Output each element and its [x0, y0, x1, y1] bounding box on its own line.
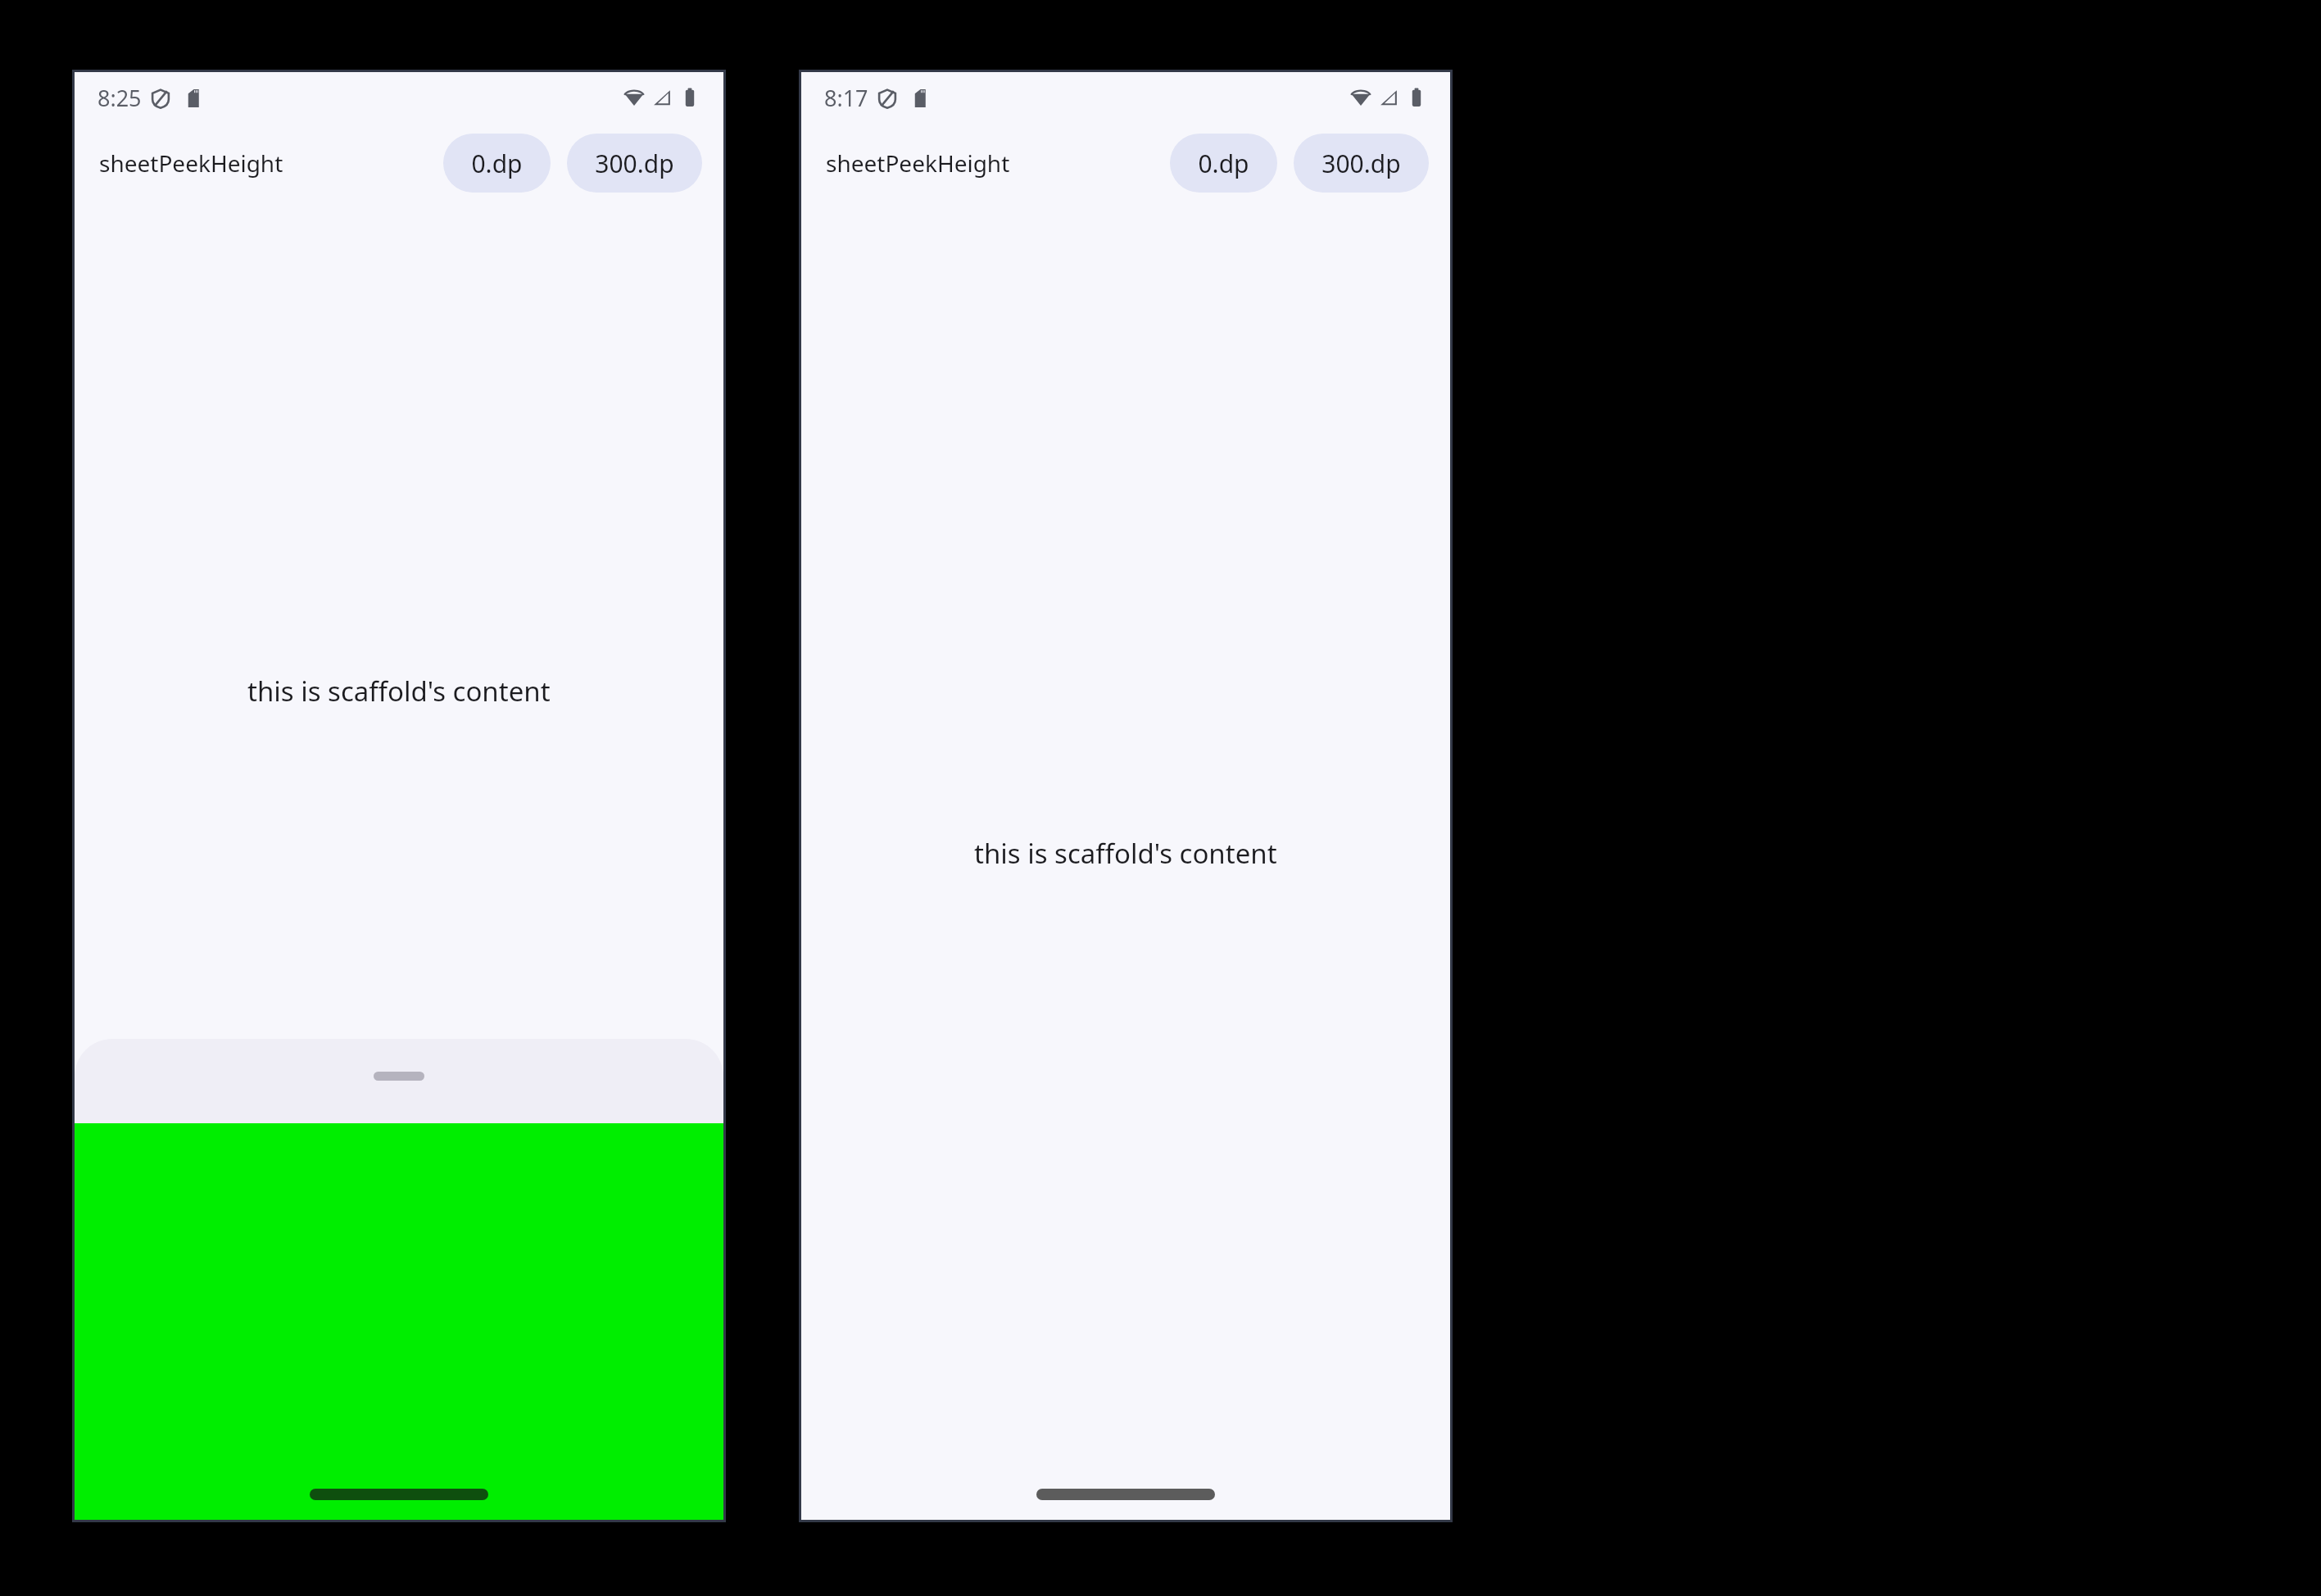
button[interactable]: 0.dp — [1170, 134, 1277, 193]
staticText: 300.dp — [1321, 147, 1401, 180]
staticText: 0.dp — [1198, 147, 1249, 180]
staticText: sheetPeekHeight — [99, 147, 283, 179]
button[interactable]: 0.dp — [443, 134, 551, 193]
staticText: 8:17 — [824, 83, 868, 113]
button[interactable]: 300.dp — [1294, 134, 1429, 193]
staticText: 300.dp — [595, 147, 674, 180]
other: Drag handle — [374, 1072, 424, 1081]
staticText: 0.dp — [471, 147, 523, 180]
staticText: 8:25 — [97, 83, 142, 113]
staticText: sheetPeekHeight — [826, 147, 1010, 179]
button[interactable]: 300.dp — [567, 134, 702, 193]
button[interactable]: Drag handle — [75, 1039, 723, 1123]
staticText: this is scaffold's content — [247, 673, 551, 710]
staticText: this is scaffold's content — [974, 835, 1277, 872]
